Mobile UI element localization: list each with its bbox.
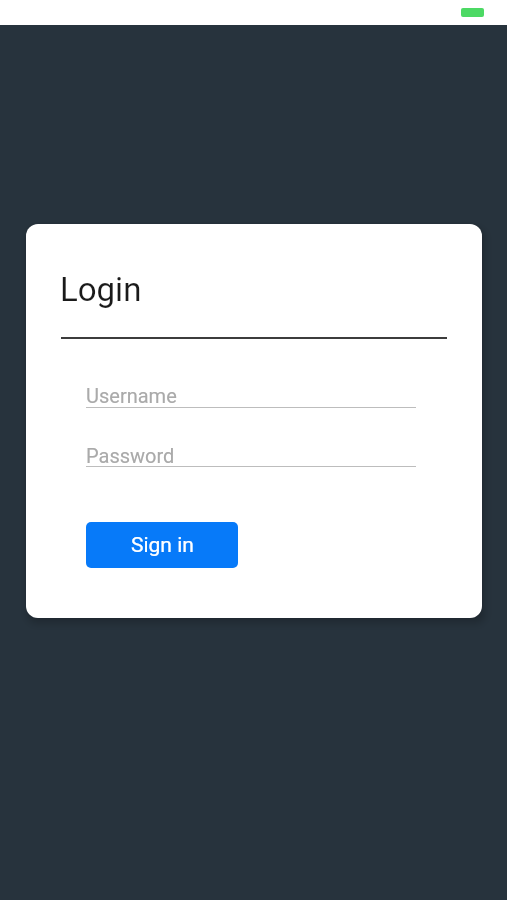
staticText: Sign in: [131, 533, 194, 558]
staticText: Login: [60, 270, 142, 309]
staticText: Username: [86, 384, 177, 407]
staticText: Password: [86, 444, 175, 467]
button[interactable]: Username: [86, 382, 442, 409]
button[interactable]: Sign in: [86, 522, 238, 568]
button[interactable]: Password: [86, 442, 442, 468]
